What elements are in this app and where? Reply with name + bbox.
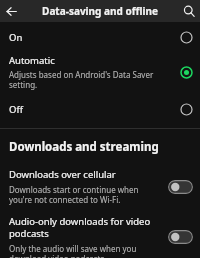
button[interactable]: Off [0, 95, 200, 122]
button[interactable]: Audio-only downloads for video podcasts [0, 215, 200, 258]
button[interactable]: Back [0, 0, 22, 22]
staticText: Data-saving and offline [42, 4, 158, 18]
button[interactable]: Select option [179, 102, 193, 116]
button[interactable]: On [0, 26, 200, 48]
staticText: On [9, 31, 179, 44]
staticText: Downloads and streaming [9, 139, 159, 155]
staticText: Automatic [9, 54, 55, 67]
staticText: Off [9, 103, 179, 116]
button[interactable]: Toggle setting [168, 230, 193, 244]
staticText: Audio-only downloads for video podcasts [9, 215, 160, 240]
button[interactable]: Downloads over cellular [0, 168, 200, 205]
staticText: Downloads over cellular [9, 168, 116, 181]
staticText: Downloads start or continue when you're … [9, 184, 160, 205]
button[interactable]: Automatic [0, 48, 200, 95]
button[interactable]: Search [178, 0, 200, 22]
staticText: Only the audio will save when you downlo… [9, 243, 160, 258]
staticText: Adjusts based on Android's Data Saver se… [9, 69, 173, 90]
button[interactable]: Select option [179, 65, 193, 79]
button[interactable]: Toggle setting [168, 180, 193, 194]
button[interactable]: Select option [179, 30, 193, 44]
